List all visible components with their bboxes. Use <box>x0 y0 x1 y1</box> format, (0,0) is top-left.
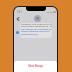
staticText: Amazon: Your code is 912738. <box>21 23 52 25</box>
staticText: can secure your account here: <box>21 27 52 30</box>
button[interactable]: Delete Message <box>14 61 57 72</box>
staticText: amzn.to/3kQ1x <box>21 32 39 35</box>
button[interactable]: Message selected <box>16 31 19 34</box>
staticText: Delete Message <box>28 63 43 68</box>
button[interactable]: Back <box>15 16 21 22</box>
staticText: https://amazon.com/a/c/r <box>21 29 50 32</box>
staticText: 9:41 <box>17 10 22 13</box>
button[interactable]: Contact <box>32 15 42 25</box>
staticText: If you didn't request this, you <box>21 24 52 27</box>
staticText: Unknown <box>32 22 42 25</box>
button[interactable]: Amazon: Your code is 912738. <box>20 23 52 38</box>
